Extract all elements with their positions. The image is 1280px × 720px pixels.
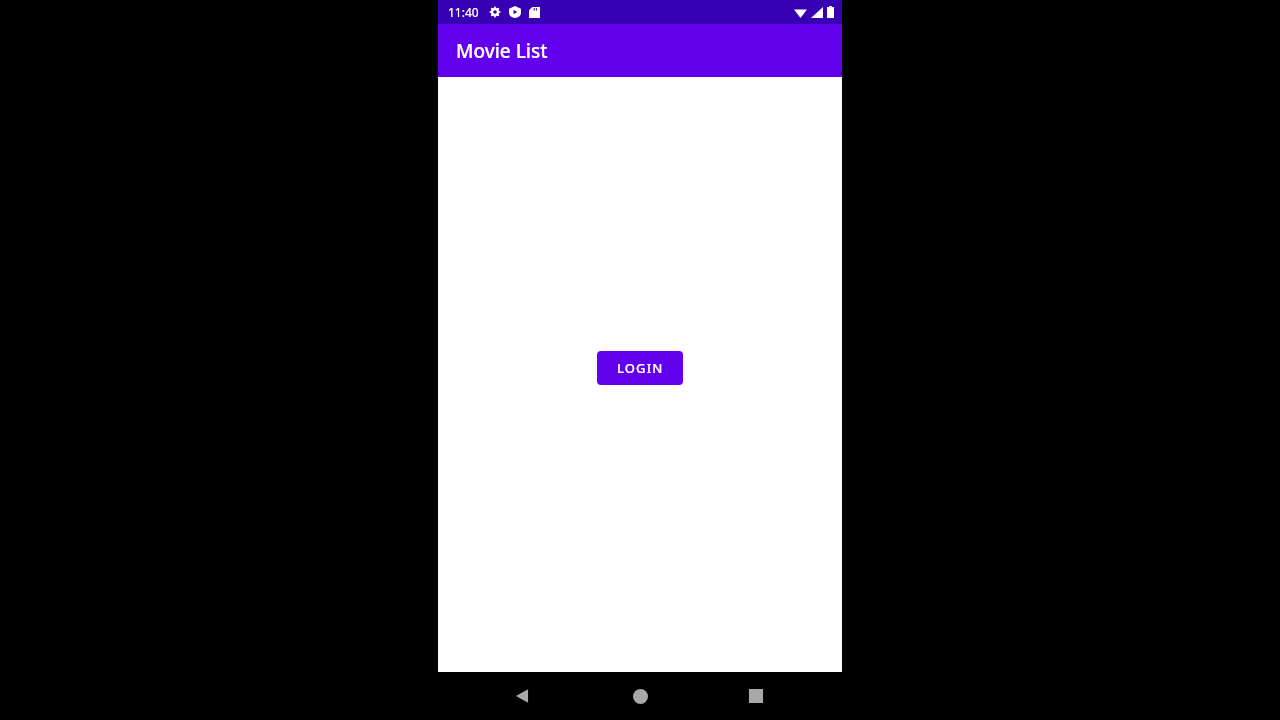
staticText: 11:40 bbox=[448, 4, 479, 20]
staticText: LOGIN bbox=[617, 359, 664, 377]
button[interactable]: Back bbox=[498, 672, 546, 720]
button[interactable]: Recent apps bbox=[732, 672, 780, 720]
button[interactable]: Home bbox=[616, 672, 664, 720]
staticText: Movie List bbox=[456, 38, 548, 64]
button[interactable]: LOGIN bbox=[597, 351, 683, 385]
